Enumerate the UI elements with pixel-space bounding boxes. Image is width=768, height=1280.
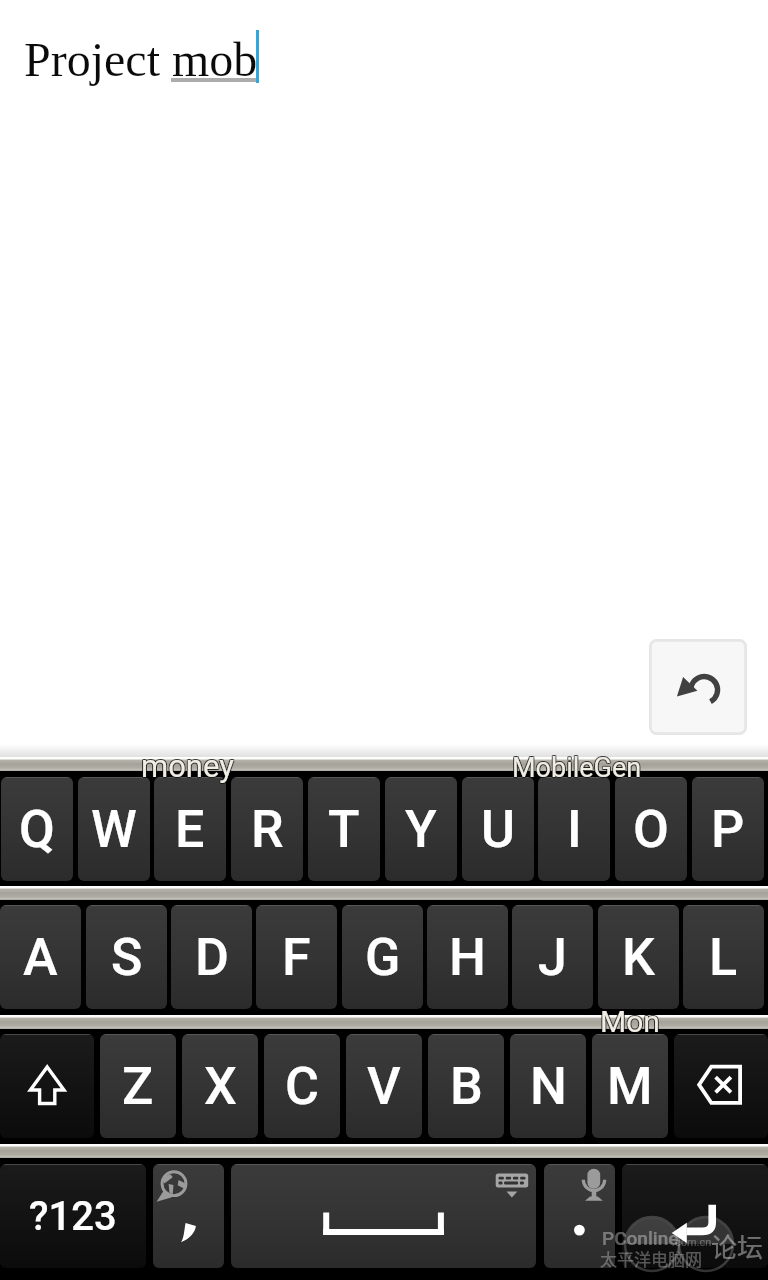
- staticText: money: [140, 747, 233, 783]
- button[interactable]: O: [615, 777, 687, 881]
- staticText: MobileGen: [512, 752, 642, 784]
- staticText: V: [367, 1056, 401, 1117]
- staticText: money: [141, 747, 234, 783]
- button[interactable]: V: [346, 1034, 422, 1138]
- staticText: 论坛: [711, 1227, 764, 1265]
- button[interactable]: Undo: [650, 640, 746, 734]
- staticText: money: [140, 748, 233, 784]
- staticText: L: [709, 927, 738, 988]
- button[interactable]: R: [231, 777, 303, 881]
- staticText: ?123: [29, 1193, 117, 1240]
- staticText: MobileGen: [513, 751, 643, 783]
- staticText: T: [328, 799, 360, 860]
- staticText: Y: [405, 799, 437, 860]
- staticText: H: [449, 927, 486, 988]
- staticText: C: [285, 1056, 319, 1117]
- staticText: MobileGen: [513, 753, 643, 785]
- staticText: X: [204, 1056, 237, 1117]
- button[interactable]: P: [692, 777, 764, 881]
- button[interactable]: Z: [100, 1034, 176, 1138]
- staticText: G: [365, 927, 401, 988]
- button[interactable]: I: [538, 777, 610, 881]
- staticText: Mon: [600, 1003, 660, 1038]
- button[interactable]: D: [171, 905, 252, 1009]
- staticText: Mon: [600, 1004, 660, 1039]
- staticText: money: [142, 748, 235, 784]
- staticText: MobileGen: [511, 751, 641, 783]
- button[interactable]: Text input field: [0, 10, 768, 100]
- button[interactable]: H: [427, 905, 508, 1009]
- staticText: money: [141, 748, 234, 784]
- staticText: I: [567, 799, 582, 860]
- staticText: P: [711, 799, 745, 860]
- button[interactable]: Enter: [622, 1164, 768, 1268]
- staticText: D: [195, 927, 229, 988]
- staticText: MobileGen: [512, 753, 642, 785]
- staticText: money: [142, 749, 235, 785]
- staticText: 太平洋电脑网: [600, 1246, 702, 1271]
- button[interactable]: X: [182, 1034, 258, 1138]
- staticText: Mon: [599, 1003, 659, 1038]
- staticText: PConline: [602, 1227, 679, 1249]
- button[interactable]: N: [510, 1034, 586, 1138]
- staticText: O: [633, 799, 669, 860]
- staticText: J: [538, 927, 567, 988]
- staticText: Mon: [599, 1004, 659, 1039]
- button[interactable]: J: [512, 905, 593, 1009]
- staticText: money: [142, 747, 235, 783]
- button[interactable]: G: [342, 905, 423, 1009]
- staticText: W: [91, 799, 137, 860]
- staticText: B: [450, 1056, 483, 1117]
- staticText: R: [251, 799, 284, 860]
- staticText: MobileGen: [511, 753, 641, 785]
- button[interactable]: W: [78, 777, 150, 881]
- button[interactable]: Period, voice input: [544, 1164, 615, 1268]
- staticText: Mon: [601, 1005, 661, 1040]
- button[interactable]: Comma, change language: [153, 1164, 224, 1268]
- staticText: Mon: [599, 1005, 659, 1040]
- staticText: MobileGen: [513, 752, 643, 784]
- staticText: Q: [19, 799, 55, 860]
- button[interactable]: ?123: [0, 1164, 146, 1268]
- staticText: money: [140, 749, 233, 785]
- staticText: S: [111, 927, 143, 988]
- button[interactable]: Delete: [674, 1034, 768, 1138]
- button[interactable]: F: [256, 905, 337, 1009]
- staticText: U: [481, 799, 515, 860]
- button[interactable]: A: [0, 905, 81, 1009]
- button[interactable]: Y: [385, 777, 457, 881]
- button[interactable]: M: [592, 1034, 668, 1138]
- staticText: K: [622, 927, 655, 988]
- staticText: .com.cn: [672, 1236, 712, 1249]
- staticText: MobileGen: [511, 752, 641, 784]
- staticText: N: [530, 1056, 567, 1117]
- button[interactable]: Space: [231, 1164, 536, 1268]
- staticText: F: [282, 927, 311, 988]
- staticText: A: [23, 927, 58, 988]
- button[interactable]: Q: [1, 777, 73, 881]
- staticText: Mon: [601, 1004, 661, 1039]
- button[interactable]: S: [86, 905, 167, 1009]
- staticText: Z: [122, 1056, 154, 1117]
- button[interactable]: Shift: [0, 1034, 94, 1138]
- button[interactable]: K: [598, 905, 679, 1009]
- button[interactable]: E: [154, 777, 226, 881]
- staticText: Mon: [600, 1005, 660, 1040]
- staticText: M: [607, 1056, 653, 1117]
- button[interactable]: L: [683, 905, 764, 1009]
- staticText: Project mob: [24, 33, 258, 86]
- button[interactable]: B: [428, 1034, 504, 1138]
- button[interactable]: T: [308, 777, 380, 881]
- staticText: money: [141, 749, 234, 785]
- staticText: E: [175, 799, 205, 860]
- staticText: Mon: [601, 1003, 661, 1038]
- button[interactable]: U: [462, 777, 534, 881]
- staticText: MobileGen: [512, 751, 642, 783]
- button[interactable]: C: [264, 1034, 340, 1138]
